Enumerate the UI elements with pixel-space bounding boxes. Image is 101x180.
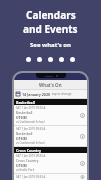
button[interactable]: Info [80, 161, 85, 166]
staticText: SAT 1 Jan 2019 09:30 A [16, 127, 46, 131]
other: Calendar [16, 92, 20, 96]
staticText: and Events [23, 22, 78, 36]
button[interactable]: SAT 1 Jan 2019 09:30 A [14, 126, 87, 147]
button[interactable]: Page 2 [37, 57, 42, 62]
staticText: Basketball [16, 131, 33, 136]
button[interactable]: SAT 1 Jan 2019 09:30 A [14, 105, 87, 126]
button[interactable]: Page 3 [48, 57, 53, 62]
button[interactable]: Info [80, 134, 85, 139]
button[interactable]: Calendar [14, 90, 87, 98]
staticText: Basketball [16, 100, 35, 105]
button[interactable]: SAT 1 Jan 2019 09:30 A [14, 153, 87, 174]
staticText: SAT 1 Jan 2019 09:30 A [16, 175, 46, 179]
staticText: vs Castlemode School [16, 141, 45, 145]
button[interactable]: Info [80, 175, 85, 179]
staticText: Basketball [16, 110, 33, 115]
staticText: U15(B) [16, 136, 27, 141]
staticText: SAT 1 Jan 2019 09:30 A [16, 154, 46, 158]
staticText: vs Castlemode School [16, 120, 45, 124]
staticText: Calendars [26, 8, 76, 22]
staticText: vs Knelle Park [16, 168, 35, 172]
button[interactable]: Info [80, 113, 85, 118]
button[interactable]: SAT 1 Jan 2019 09:30 A [14, 174, 87, 180]
button[interactable]: Page 5 [70, 57, 75, 62]
button[interactable]: Page 4 [59, 57, 64, 62]
staticText: U15(B) [16, 163, 27, 168]
staticText: U15(B) [16, 115, 27, 120]
button[interactable]: Cross Country [14, 147, 87, 153]
button[interactable]: Basketball [14, 99, 87, 105]
staticText: What's On [39, 82, 62, 88]
staticText: Cross Country [16, 158, 39, 163]
button[interactable]: Page 1 [26, 57, 31, 62]
staticText: 14 January 2020 [22, 92, 51, 97]
staticText: tap to change [52, 92, 72, 96]
staticText: Cross Country [16, 148, 42, 153]
button[interactable]: What's On [14, 80, 87, 89]
staticText: SAT 1 Jan 2019 09:30 A [16, 106, 46, 110]
staticText: See what's on [30, 41, 72, 49]
